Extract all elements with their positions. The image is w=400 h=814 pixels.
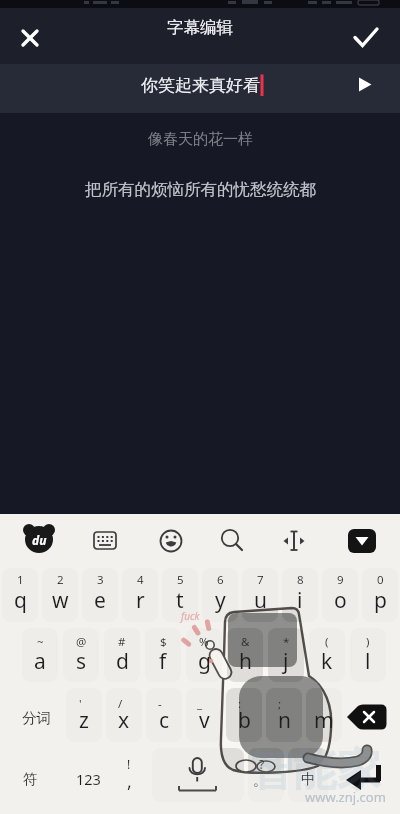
button[interactable]: 9 [320,564,360,596]
button[interactable]: q [0,584,40,616]
button[interactable] [209,519,253,563]
button[interactable] [350,21,384,53]
button[interactable]: k [307,645,347,677]
button[interactable]: ' [60,688,100,720]
staticText: ~ [37,634,44,650]
staticText: f [159,647,167,676]
staticText: t [176,586,184,615]
staticText: / [118,696,123,712]
button[interactable] [342,758,390,802]
button[interactable]: d [102,645,142,677]
button[interactable]: l [348,645,388,677]
staticText: 0 [377,572,384,588]
staticText: l [365,647,371,676]
staticText: 你笑起来真好看 [141,75,260,96]
button[interactable]: ) [348,626,388,658]
button[interactable]: x [104,704,144,736]
button[interactable]: 6 [200,564,240,596]
button[interactable]: n [264,704,304,736]
button[interactable]: b [224,704,264,736]
button[interactable]: w [40,584,80,616]
button[interactable] [14,22,46,54]
button[interactable]: 1 [0,564,40,596]
button[interactable] [340,519,384,563]
staticText: ' [79,696,82,712]
button[interactable]: e [80,584,120,616]
staticText: j [283,647,289,676]
button[interactable]: ? [242,748,282,780]
button[interactable]: / [100,688,140,720]
button[interactable]: 符 [10,763,50,795]
button[interactable] [344,700,392,736]
button[interactable]: t [160,584,200,616]
staticText: a [34,647,46,676]
button[interactable] [344,68,384,102]
button[interactable]: c [144,704,184,736]
button[interactable]: i [280,584,320,616]
button[interactable] [8,688,72,742]
button[interactable]: v [184,704,224,736]
button[interactable]: 0 [360,564,400,596]
staticText: 像春天的花一样 [148,130,253,149]
button[interactable]: # [102,626,142,658]
button[interactable]: ~ [20,626,60,658]
button[interactable]: j [266,645,306,677]
staticText: 5 [177,572,184,588]
staticText: m [314,706,334,735]
staticText: & [241,634,250,650]
button[interactable]: 7 [240,564,280,596]
button[interactable] [150,748,246,802]
button[interactable]: 123 [68,763,108,795]
button[interactable]: % [184,626,224,658]
button[interactable]: ( [307,626,347,658]
button[interactable] [149,519,193,563]
staticText: h [239,647,252,676]
button[interactable]: _ [180,688,220,720]
button[interactable]: u [240,584,280,616]
button[interactable]: & [225,626,265,658]
staticText: e [94,586,106,615]
button[interactable]: f [143,645,183,677]
button[interactable]: 4 [120,564,160,596]
staticText: o [334,586,347,615]
staticText: ! [127,756,131,772]
staticText: @ [76,634,87,650]
button[interactable]: - [140,688,180,720]
button[interactable]: r [120,584,160,616]
button[interactable]: z [64,704,104,736]
button[interactable]: 8 [280,564,320,596]
button[interactable] [17,519,61,563]
button[interactable] [0,64,400,113]
button[interactable]: , [109,765,149,797]
staticText: _ [197,696,203,712]
staticText: u [254,586,267,615]
button[interactable] [272,519,316,563]
button[interactable] [83,519,127,563]
staticText: k [321,647,333,676]
button[interactable]: y [200,584,240,616]
button[interactable]: p [360,584,400,616]
button[interactable]: g [184,645,224,677]
staticText: 智能家 [249,743,381,798]
button[interactable]: 5 [160,564,200,596]
button[interactable]: 3 [80,564,120,596]
staticText: i [297,586,303,615]
button[interactable]: ! [109,748,149,780]
button[interactable]: s [61,645,101,677]
button[interactable]: m [304,704,344,736]
button[interactable]: 。 [240,765,280,797]
button[interactable]: o [320,584,360,616]
button[interactable]: 中 [288,763,328,795]
button[interactable]: 分词 [16,702,56,734]
staticText: 9 [337,572,344,588]
button[interactable]: $ [143,626,183,658]
button[interactable]: 2 [40,564,80,596]
staticText: ) [366,634,370,650]
button[interactable]: a [20,645,60,677]
button[interactable]: ; [260,688,300,720]
staticText: 。 [253,772,267,790]
button[interactable]: : [220,688,260,720]
button[interactable]: h [225,645,265,677]
button[interactable]: * [266,626,306,658]
button[interactable]: @ [61,626,101,658]
